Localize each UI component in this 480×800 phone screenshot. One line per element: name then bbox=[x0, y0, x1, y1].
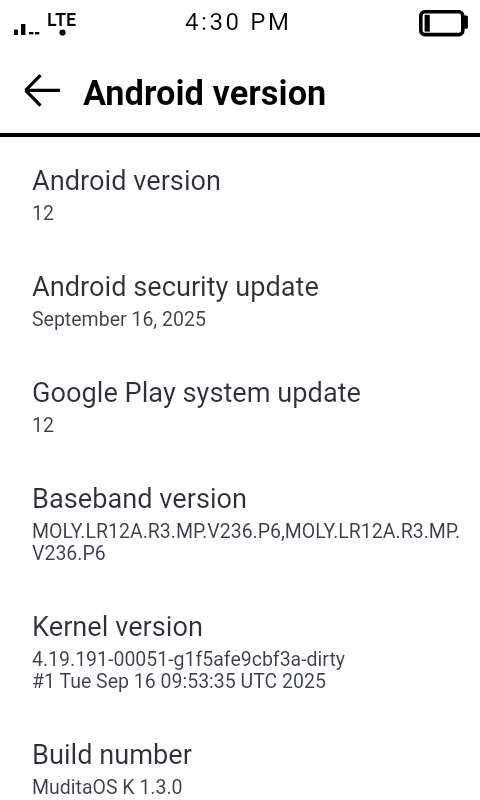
button[interactable]: Google Play system update bbox=[0, 377, 480, 483]
staticText: Android security update bbox=[32, 271, 319, 303]
staticText: 4:30 PM bbox=[185, 8, 292, 36]
staticText: Baseband version bbox=[32, 483, 248, 515]
staticText: Android version bbox=[32, 165, 222, 197]
button[interactable]: Back bbox=[9, 70, 73, 134]
button[interactable]: Kernel version bbox=[0, 611, 480, 739]
button[interactable]: Build number bbox=[0, 739, 480, 800]
staticText: Build number bbox=[32, 739, 192, 771]
staticText: Android version bbox=[83, 73, 327, 113]
staticText: 12 bbox=[32, 414, 54, 437]
staticText: Google Play system update bbox=[32, 377, 362, 409]
staticText: 12 bbox=[32, 202, 54, 225]
staticText: September 16, 2025 bbox=[32, 308, 206, 331]
button[interactable]: Baseband version bbox=[0, 483, 480, 611]
staticText: LTE bbox=[47, 9, 77, 30]
staticText: 4.19.191-00051-g1f5afe9cbf3a-dirty #1 Tu… bbox=[32, 648, 346, 693]
staticText: Kernel version bbox=[32, 611, 203, 643]
other: Battery bbox=[419, 10, 470, 38]
button[interactable]: Android security update bbox=[0, 271, 480, 377]
button[interactable]: Android version bbox=[0, 165, 480, 271]
staticText: MOLY.LR12A.R3.MP.V236.P6,MOLY.LR12A.R3.M… bbox=[32, 520, 461, 565]
staticText: MuditaOS K 1.3.0 bbox=[32, 776, 183, 799]
